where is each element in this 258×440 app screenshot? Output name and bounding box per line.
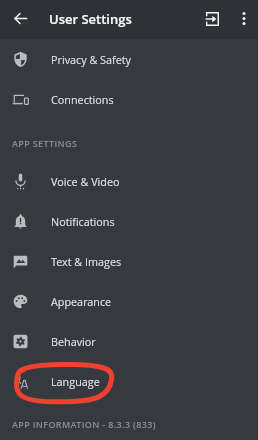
- button[interactable]: Navigate up: [0, 0, 40, 38]
- button[interactable]: More options: [230, 0, 258, 38]
- button[interactable]: Voice & Video: [0, 161, 258, 201]
- button[interactable]: Log out: [194, 0, 230, 38]
- staticText: Privacy & Safety: [51, 52, 132, 67]
- button[interactable]: Text & Images: [0, 241, 258, 281]
- button[interactable]: Notifications: [0, 201, 258, 241]
- staticText: APP INFORMATION - 8.3.3 (833): [12, 418, 156, 430]
- staticText: APP SETTINGS: [12, 137, 78, 149]
- staticText: Appearance: [51, 294, 112, 309]
- staticText: User Settings: [49, 10, 132, 28]
- staticText: Notifications: [51, 214, 115, 229]
- button[interactable]: Behavior: [0, 321, 258, 361]
- staticText: Connections: [51, 92, 114, 107]
- staticText: Behavior: [51, 334, 96, 349]
- staticText: Text & Images: [51, 254, 122, 269]
- button[interactable]: Appearance: [0, 281, 258, 321]
- staticText: Language: [51, 374, 100, 389]
- button[interactable]: Language: [0, 361, 258, 401]
- button[interactable]: Connections: [0, 79, 258, 119]
- button[interactable]: Privacy & Safety: [0, 39, 258, 79]
- staticText: Voice & Video: [51, 174, 120, 189]
